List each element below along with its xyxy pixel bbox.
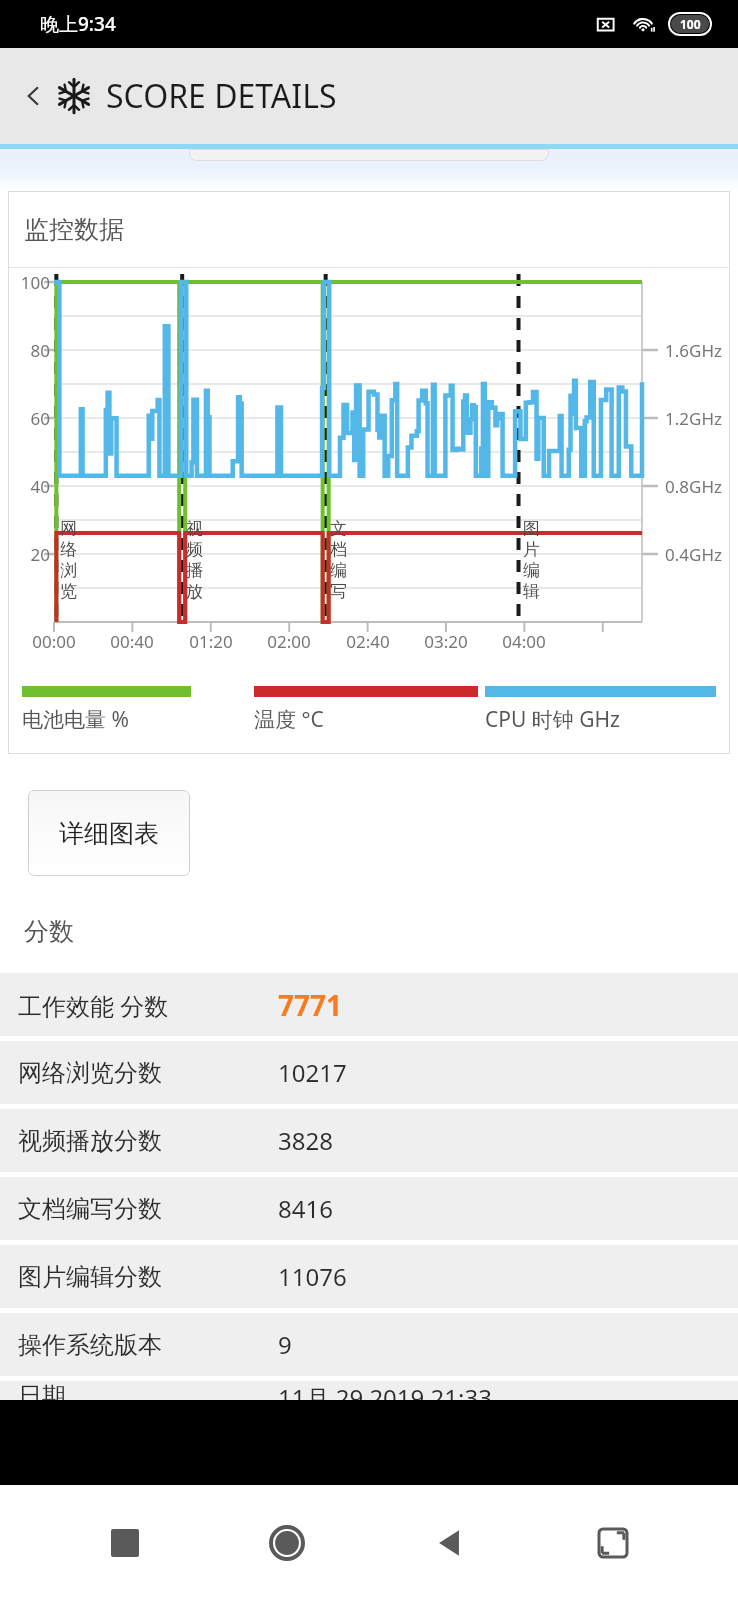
staticText: 11月 29 2019 21:33 — [278, 1381, 492, 1400]
staticText: 辑 — [523, 581, 540, 602]
button[interactable]: Home — [255, 1511, 319, 1575]
staticText: 晚上9:34 — [40, 11, 116, 37]
staticText: SCORE DETAILS — [106, 74, 337, 118]
staticText: 10217 — [278, 1056, 347, 1089]
staticText: 频 — [186, 539, 203, 560]
staticText: 7771 — [278, 986, 343, 1024]
staticText: 络 — [60, 539, 77, 560]
staticText: 9 — [278, 1328, 292, 1361]
staticText: 详细图表 — [59, 818, 159, 849]
staticText: 0.8GHz — [665, 475, 722, 498]
staticText: 片 — [523, 539, 540, 560]
staticText: 分数 — [24, 916, 74, 947]
button[interactable]: 详细图表 — [28, 790, 190, 876]
staticText: 1.6GHz — [665, 339, 722, 362]
staticText: 档 — [330, 539, 347, 560]
button[interactable]: Recents — [93, 1511, 157, 1575]
staticText: 3828 — [278, 1124, 333, 1157]
staticText: CPU 时钟 GHz — [485, 705, 716, 734]
staticText: 8416 — [278, 1192, 333, 1225]
staticText: 文 — [330, 518, 347, 539]
staticText: 图片编辑分数 — [18, 1262, 278, 1292]
staticText: 工作效能 分数 — [18, 989, 278, 1022]
staticText: 日期 — [18, 1381, 278, 1400]
staticText: 80 — [12, 339, 50, 362]
staticText: 02:00 — [263, 630, 315, 653]
staticText: 编 — [523, 560, 540, 581]
button[interactable]: Back — [418, 1511, 482, 1575]
staticText: 浏 — [60, 560, 77, 581]
staticText: 03:20 — [420, 630, 472, 653]
button[interactable]: 日期 — [0, 1381, 738, 1400]
staticText: 100 — [12, 271, 50, 294]
staticText: 100 — [680, 16, 701, 32]
button[interactable]: Split screen — [581, 1511, 645, 1575]
staticText: 20 — [12, 543, 50, 566]
staticText: 图 — [523, 518, 540, 539]
button[interactable]: Back — [14, 76, 54, 116]
staticText: 播 — [186, 560, 203, 581]
staticText: 11076 — [278, 1260, 347, 1293]
staticText: 写 — [330, 581, 347, 602]
staticText: 文档编写分数 — [18, 1194, 278, 1224]
staticText: 温度 °C — [254, 705, 485, 734]
button[interactable]: 操作系统版本 — [0, 1313, 738, 1376]
staticText: 00:40 — [106, 630, 158, 653]
staticText: 监控数据 — [24, 214, 124, 245]
staticText: 60 — [12, 407, 50, 430]
staticText: 编 — [330, 560, 347, 581]
staticText: 01:20 — [185, 630, 237, 653]
staticText: 04:00 — [498, 630, 550, 653]
staticText: 1.2GHz — [665, 407, 722, 430]
staticText: 视 — [186, 518, 203, 539]
staticText: 00:00 — [28, 630, 80, 653]
staticText: 电池电量 % — [22, 705, 254, 734]
staticText: 网 — [60, 518, 77, 539]
staticText: 0.4GHz — [665, 543, 722, 566]
button[interactable]: 视频播放分数 — [0, 1109, 738, 1172]
staticText: 网络浏览分数 — [18, 1058, 278, 1088]
button[interactable]: 网络浏览分数 — [0, 1041, 738, 1104]
button[interactable]: 工作效能 分数 — [0, 973, 738, 1036]
staticText: 放 — [186, 581, 203, 602]
staticText: 操作系统版本 — [18, 1330, 278, 1360]
staticText: 视频播放分数 — [18, 1126, 278, 1156]
staticText: 40 — [12, 475, 50, 498]
staticText: 览 — [60, 581, 77, 602]
staticText: 02:40 — [342, 630, 394, 653]
button[interactable]: 图片编辑分数 — [0, 1245, 738, 1308]
button[interactable]: 文档编写分数 — [0, 1177, 738, 1240]
